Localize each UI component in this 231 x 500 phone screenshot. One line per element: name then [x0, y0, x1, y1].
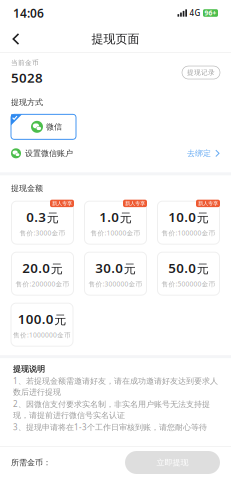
staticText: 元	[197, 261, 209, 276]
staticText: 50.0	[168, 259, 196, 277]
staticText: 2、因微信支付要求实名制，非实名用户账号无法支持提现，请提前进行微信号实名认证	[13, 399, 210, 420]
button[interactable]: 设置微信账户	[0, 145, 231, 161]
staticText: 新人专享	[198, 200, 218, 207]
staticText: 所需金币：	[11, 458, 51, 467]
button[interactable]: 50.0	[157, 252, 219, 295]
staticText: 30.0	[95, 259, 123, 277]
button[interactable]: 100.0	[11, 303, 73, 346]
staticText: 售价:100000金币	[161, 229, 215, 237]
staticText: 元	[120, 210, 132, 225]
staticText: 20.0	[22, 259, 50, 277]
staticText: 提现说明	[13, 364, 45, 374]
staticText: 新人专享	[52, 200, 72, 207]
button[interactable]: 10.0	[157, 201, 219, 244]
staticText: 设置微信账户	[25, 148, 73, 158]
button[interactable]: 0.3	[11, 201, 73, 244]
staticText: 提现页面	[91, 32, 139, 46]
button[interactable]: 30.0	[84, 252, 146, 295]
staticText: 售价:1000000金币	[13, 331, 71, 339]
button[interactable]: 1.0	[84, 201, 146, 244]
staticText: 元	[47, 210, 59, 225]
staticText: 1.0	[99, 208, 119, 226]
button[interactable]: 立即提现	[125, 451, 220, 474]
staticText: 去绑定	[187, 148, 211, 158]
button[interactable]: 返回	[4, 27, 28, 51]
staticText: 新人专享	[125, 200, 145, 207]
staticText: 0.3	[26, 208, 46, 226]
staticText: 当前金币	[11, 59, 39, 67]
staticText: 3、提现申请将在1-3个工作日审核到账，请您耐心等待	[13, 422, 207, 432]
staticText: 元	[124, 261, 136, 276]
staticText: 微信	[46, 122, 62, 132]
button[interactable]: 20.0	[11, 252, 73, 295]
staticText: 10.0	[168, 208, 196, 226]
staticText: 96+	[204, 9, 216, 17]
staticText: 14:06	[13, 5, 44, 21]
staticText: 元	[54, 312, 66, 327]
staticText: 立即提现	[156, 458, 188, 467]
staticText: 4G	[189, 8, 200, 18]
staticText: 提现记录	[187, 68, 215, 77]
button[interactable]: 提现记录	[182, 66, 220, 79]
staticText: 售价:500000金币	[161, 280, 215, 288]
staticText: 售价:300000金币	[88, 280, 142, 288]
staticText: 元	[51, 261, 63, 276]
staticText: 提现方式	[11, 97, 43, 107]
staticText: 1、若提现金额需邀请好友，请在成功邀请好友达到要求人数后进行提现	[13, 375, 218, 397]
staticText: 售价:10000金币	[90, 229, 140, 237]
staticText: 元	[197, 210, 209, 225]
staticText: 5028	[11, 69, 43, 86]
staticText: 售价:200000金币	[15, 280, 69, 288]
staticText: 提现金额	[11, 183, 43, 193]
button[interactable]: 微信	[11, 114, 76, 139]
staticText: 售价:3000金币	[19, 229, 65, 237]
staticText: 100.0	[18, 310, 54, 328]
